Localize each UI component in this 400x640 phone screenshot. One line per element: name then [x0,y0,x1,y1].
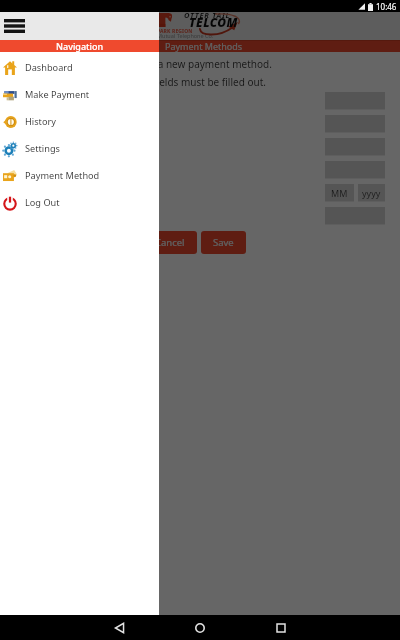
button[interactable]: Recents [261,615,301,640]
staticText: 10:46 [376,1,397,12]
staticText: Make Payment [25,88,90,101]
button[interactable]: Back [99,615,139,640]
button[interactable]: History [0,108,159,135]
staticText: All fields must be filled out. [139,75,266,89]
button[interactable]: Save [201,231,246,254]
staticText: Zip code [20,169,58,182]
staticText: Enter a new payment method. [130,57,272,71]
staticText: Payment Method [25,169,100,182]
staticText: Mutual Telephone Co. [157,32,214,39]
staticText: Address [20,146,56,159]
staticText: Navigation [56,40,104,52]
staticText: Save [213,236,234,249]
staticText: MM [331,187,348,199]
staticText: yyyy [362,187,381,199]
staticText: Log Out [25,196,60,209]
staticText: Dashboard [25,61,73,74]
staticText: Cancel [155,236,185,249]
button[interactable]: MM [325,184,354,202]
button[interactable]: Open navigation drawer [0,12,28,40]
button[interactable]: Home [180,615,220,640]
staticText: Expiration [20,192,66,205]
button[interactable]: Cancel [143,231,197,254]
button[interactable]: Make Payment [0,81,159,108]
button[interactable]: Dashboard [0,54,159,81]
staticText: Payment Methods [165,40,243,52]
staticText: PARK REGION [157,28,193,35]
staticText: Card number [20,123,80,136]
button[interactable]: Payment Method [0,162,159,189]
button[interactable]: yyyy [358,184,385,202]
staticText: Settings [25,142,60,155]
button[interactable]: Log Out [0,189,159,216]
staticText: TELCOM [189,14,238,30]
button[interactable]: Settings [0,135,159,162]
staticText: History [25,115,56,128]
staticText: OTTER TAIL [184,10,231,20]
